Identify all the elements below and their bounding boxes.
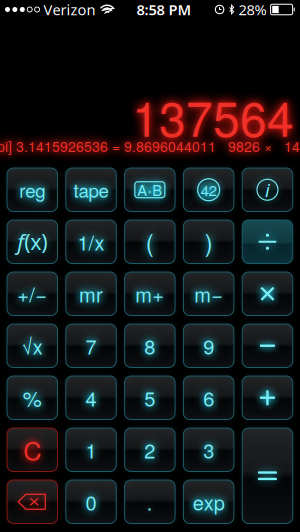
button[interactable]: ) [183, 220, 234, 263]
staticText: 3 [203, 435, 214, 464]
staticText: tape [73, 176, 108, 203]
button[interactable]: % [7, 376, 57, 419]
staticText: mr [79, 279, 103, 308]
button[interactable]: 0 [66, 480, 116, 523]
staticText: +/− [17, 279, 47, 308]
button[interactable]: C [7, 428, 57, 471]
staticText: . [147, 487, 153, 516]
button[interactable]: Equals [242, 428, 293, 523]
staticText: i [265, 177, 270, 202]
staticText: 2 [144, 435, 155, 464]
staticText: √x [22, 331, 43, 360]
button[interactable]: +/− [7, 272, 57, 315]
button[interactable]: 7 [66, 324, 116, 367]
staticText: f [17, 228, 24, 256]
button[interactable]: 5 [125, 376, 175, 419]
button[interactable]: m− [183, 272, 234, 315]
button[interactable]: ( [125, 220, 175, 263]
button[interactable]: 8 [125, 324, 175, 367]
staticText: m− [194, 279, 223, 308]
button[interactable]: m+ [125, 272, 175, 315]
button[interactable]: 1 [66, 428, 116, 471]
staticText: ( [146, 225, 154, 259]
button[interactable]: Delete [7, 480, 57, 523]
staticText: (x) [24, 228, 47, 256]
button[interactable]: Subtract [242, 324, 293, 367]
button[interactable]: 6 [183, 376, 234, 419]
staticText: reg [19, 176, 45, 203]
staticText: 28% [235, 0, 271, 19]
button[interactable]: exp [183, 480, 234, 523]
staticText: 8 [144, 331, 155, 360]
staticText: % [23, 382, 42, 413]
staticText: Verizon [40, 0, 96, 19]
staticText: C [23, 432, 41, 468]
staticText: 4 [85, 383, 96, 412]
staticText: 1 [85, 435, 96, 464]
staticText: 1/x [77, 227, 104, 256]
button[interactable]: 4 [66, 376, 116, 419]
button[interactable]: reg [7, 168, 57, 211]
staticText: 8:58 PM [137, 0, 192, 19]
staticText: 7 [85, 331, 96, 360]
staticText: ) [205, 225, 213, 259]
staticText: m+ [135, 279, 164, 308]
button[interactable]: Info [242, 168, 293, 211]
staticText: exp [193, 487, 225, 516]
button[interactable]: tape [66, 168, 116, 211]
staticText: pi] 3.1415926536 = 9.8696044011 9826 × 1… [0, 136, 300, 156]
button[interactable]: mr [66, 272, 116, 315]
button[interactable]: A to B [125, 168, 175, 211]
staticText: 5 [144, 383, 155, 412]
button[interactable]: Add [242, 376, 293, 419]
button[interactable]: 1/x [66, 220, 116, 263]
button[interactable]: . [125, 480, 175, 523]
button[interactable]: Divide [242, 220, 293, 263]
button[interactable]: Multiply [242, 272, 293, 315]
button[interactable]: 2 [125, 428, 175, 471]
button[interactable]: 3 [183, 428, 234, 471]
staticText: 137564 [132, 82, 294, 150]
staticText: 42 [201, 179, 217, 200]
button[interactable]: 9 [183, 324, 234, 367]
staticText: 9 [203, 331, 214, 360]
staticText: 0 [85, 487, 96, 516]
staticText: 6 [203, 383, 214, 412]
button[interactable]: 42 [183, 168, 234, 211]
staticText: A›B [137, 179, 162, 200]
button[interactable]: f of x [7, 220, 57, 263]
button[interactable]: √x [7, 324, 57, 367]
